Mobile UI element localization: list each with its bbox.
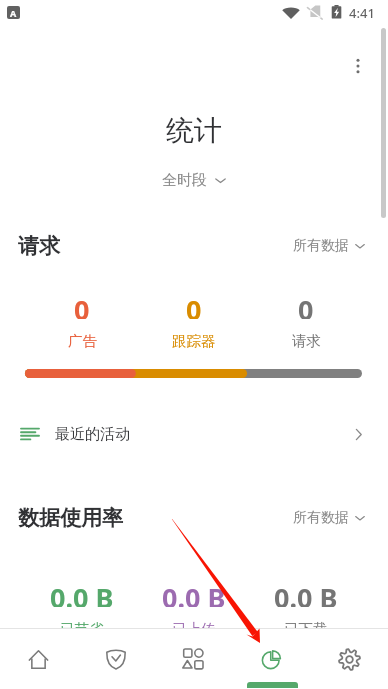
- staticText: 所有数据: [293, 237, 349, 255]
- button[interactable]: 所有数据: [293, 509, 366, 527]
- staticText: 全时段: [162, 171, 207, 190]
- button[interactable]: Apps: [154, 629, 232, 689]
- staticText: 请求: [18, 233, 60, 259]
- staticText: 数据使用率: [18, 505, 123, 531]
- button[interactable]: 所有数据: [293, 237, 366, 255]
- staticText: 0: [298, 291, 314, 319]
- staticText: A: [10, 7, 17, 19]
- button[interactable]: 全时段: [0, 168, 388, 192]
- button[interactable]: More options: [336, 44, 380, 88]
- staticText: 所有数据: [293, 509, 349, 527]
- staticText: 0.0 B: [50, 579, 114, 607]
- button[interactable]: Protection: [77, 629, 154, 689]
- staticText: 0: [186, 291, 202, 319]
- staticText: 0.0 B: [274, 579, 338, 607]
- staticText: 最近的活动: [55, 425, 130, 444]
- button[interactable]: Settings: [310, 629, 388, 689]
- staticText: 已上传: [172, 620, 216, 638]
- staticText: 已节省: [60, 620, 104, 638]
- staticText: 跟踪器: [172, 332, 216, 350]
- staticText: 4:41: [349, 4, 375, 22]
- staticText: 0.0 B: [162, 579, 226, 607]
- staticText: 已下载: [284, 620, 328, 638]
- button[interactable]: Statistics: [232, 629, 310, 689]
- button[interactable]: 最近的活动: [0, 408, 388, 460]
- staticText: 广告: [68, 332, 97, 350]
- staticText: 0: [74, 291, 90, 319]
- button[interactable]: Home: [0, 629, 77, 689]
- staticText: 统计: [166, 113, 222, 148]
- staticText: 请求: [292, 332, 321, 350]
